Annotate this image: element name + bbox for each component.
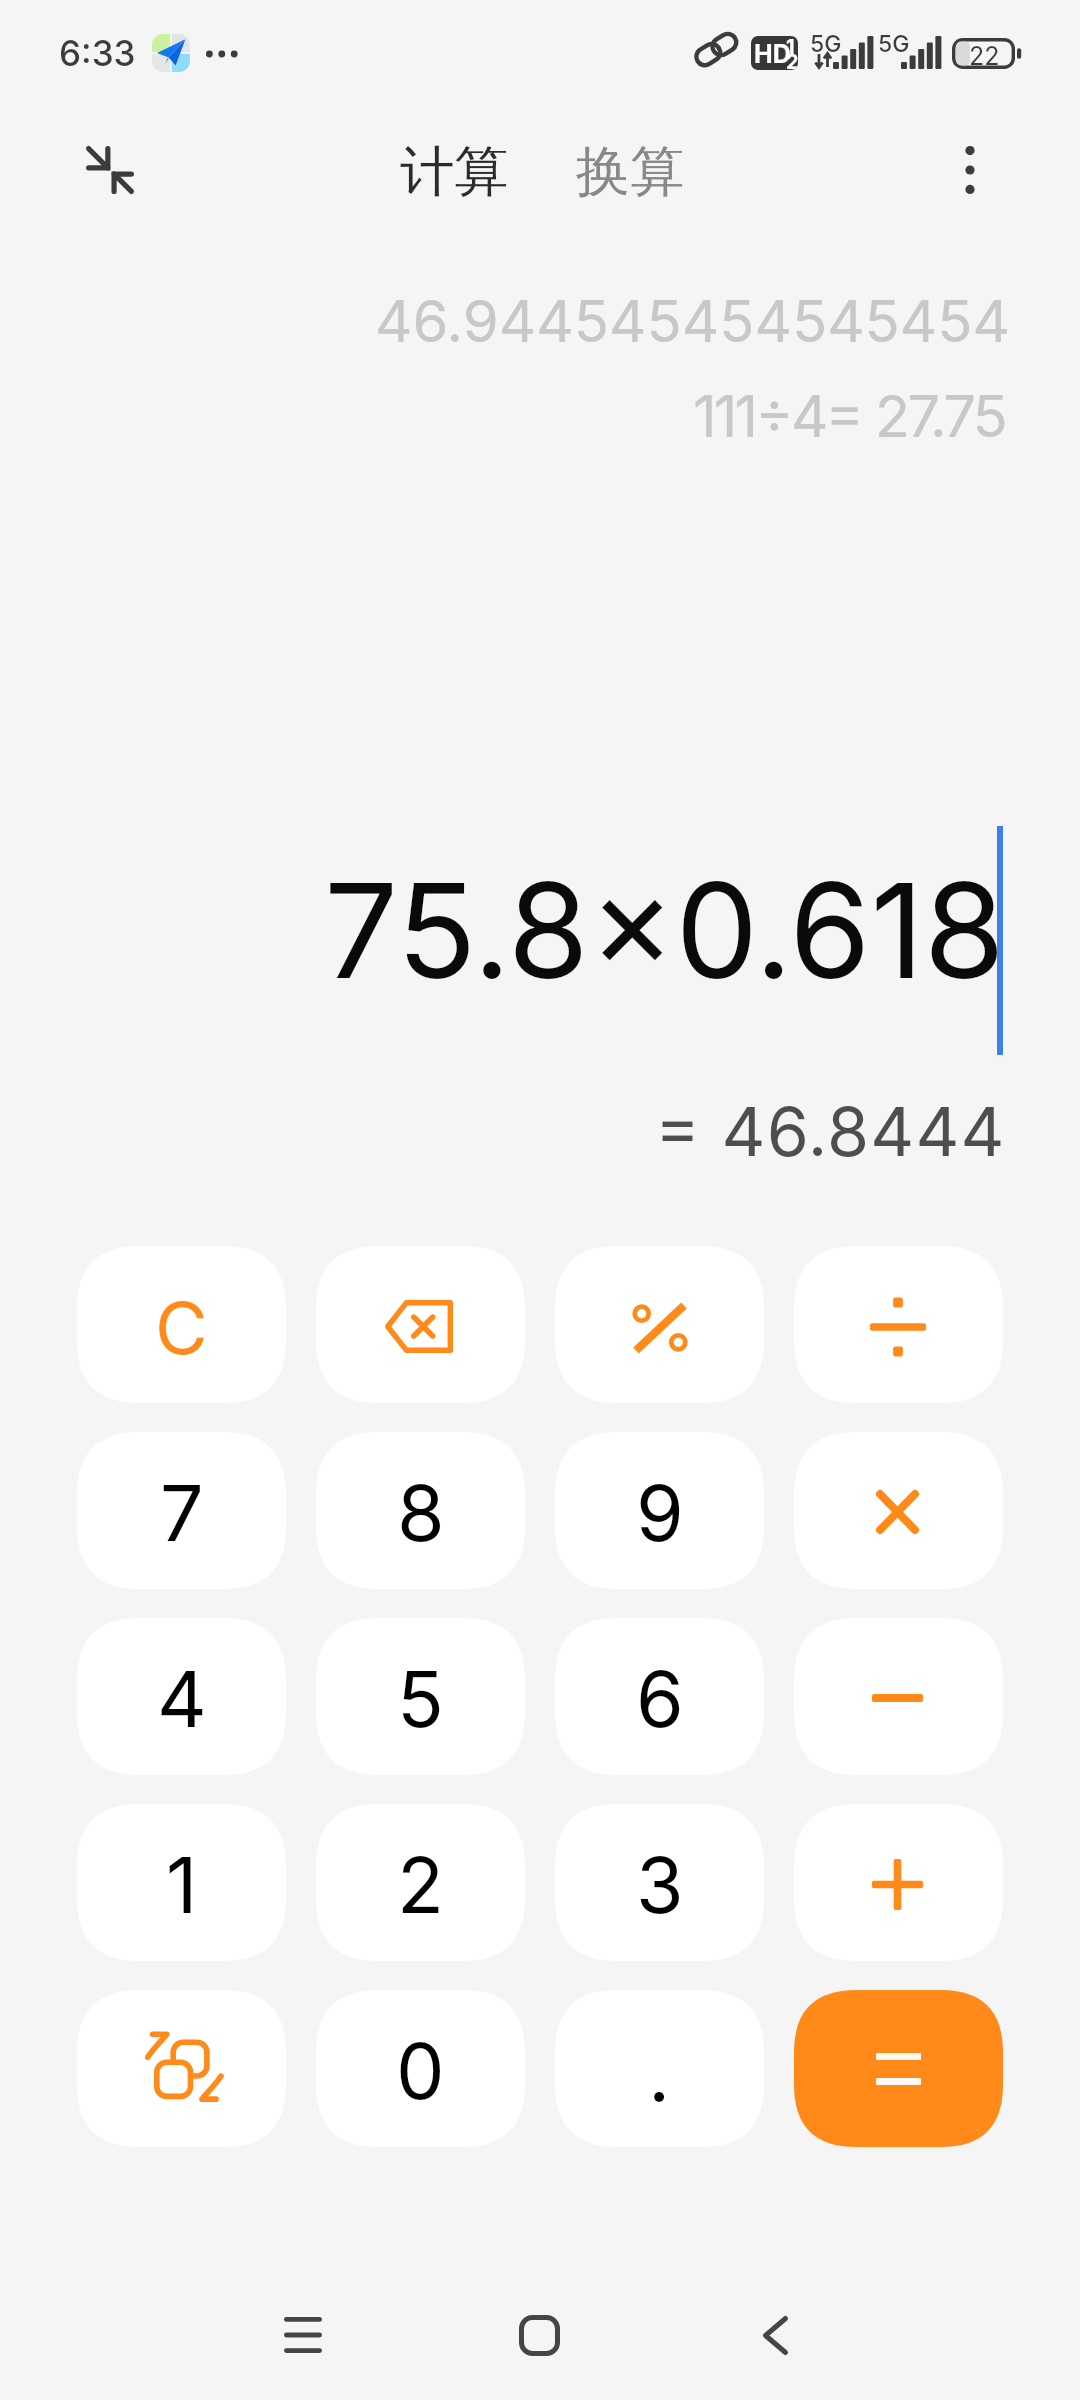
staticText: 5G (878, 30, 910, 58)
button[interactable]: 3 (555, 1804, 764, 1961)
staticText: 4 (157, 1652, 207, 1745)
staticText: 111÷4= 27.75 (693, 381, 1006, 451)
staticText: 2 (397, 1838, 444, 1931)
button[interactable]: Plus (794, 1804, 1003, 1961)
button[interactable]: Home (479, 2275, 599, 2395)
staticText: 5G (810, 30, 842, 58)
button[interactable]: 0 (316, 1990, 525, 2147)
button[interactable]: Multiply (794, 1432, 1003, 1589)
staticText: 75.8×0.618 (324, 851, 1005, 1010)
button[interactable]: 1 (77, 1804, 286, 1961)
staticText: 8 (397, 1466, 445, 1559)
button[interactable]: Delete (316, 1246, 525, 1403)
staticText: 3 (636, 1838, 684, 1931)
button[interactable]: Percent (555, 1246, 764, 1403)
staticText: 1 (166, 1838, 198, 1931)
button[interactable]: 计算 (387, 130, 521, 214)
staticText: 5 (397, 1652, 444, 1745)
button[interactable]: 4 (77, 1618, 286, 1775)
button[interactable]: More options (922, 122, 1018, 218)
button[interactable]: 2 (316, 1804, 525, 1961)
staticText: 7 (160, 1466, 204, 1559)
button[interactable]: Equals (794, 1990, 1003, 2147)
staticText: 0 (396, 2024, 445, 2117)
staticText: 22 (969, 41, 1000, 71)
staticText: 1 (786, 36, 795, 59)
staticText: 6 (636, 1652, 684, 1745)
staticText: C (155, 1284, 208, 1371)
button[interactable]: Decimal point (555, 1990, 764, 2147)
button[interactable]: 6 (555, 1618, 764, 1775)
staticText: 6:33 (59, 32, 136, 74)
button[interactable]: 5 (316, 1618, 525, 1775)
button[interactable]: Unit converter (77, 1990, 286, 2147)
button[interactable]: 9 (555, 1432, 764, 1589)
button[interactable]: Recent apps (243, 2275, 363, 2395)
staticText: 换算 (576, 138, 684, 206)
button[interactable]: 7 (77, 1432, 286, 1589)
staticText: HD (754, 39, 791, 69)
button[interactable]: 8 (316, 1432, 525, 1589)
button[interactable]: Collapse (62, 122, 158, 218)
staticText: 46.944545454545454 (375, 286, 1011, 356)
button[interactable]: Divide (794, 1246, 1003, 1403)
staticText: 计算 (400, 138, 508, 206)
button[interactable]: Minus (794, 1618, 1003, 1775)
button[interactable]: Back (715, 2275, 835, 2395)
staticText: . (648, 2027, 671, 2120)
button[interactable]: 换算 (563, 130, 697, 214)
staticText: 9 (636, 1466, 684, 1559)
staticText: 2 (786, 50, 798, 70)
button[interactable]: Clear (77, 1246, 286, 1403)
staticText: = 46.8444 (655, 1090, 1006, 1172)
